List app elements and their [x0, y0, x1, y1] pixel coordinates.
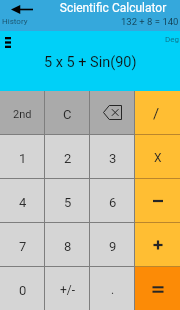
other: Minus: [148, 190, 168, 210]
staticText: 6: [109, 195, 117, 210]
staticText: 5: [64, 195, 72, 210]
button[interactable]: Back: [0, 0, 44, 19]
button[interactable]: +/-: [45, 266, 90, 310]
staticText: Deg: [165, 35, 179, 44]
staticText: 7: [19, 239, 27, 254]
staticText: 4: [19, 195, 27, 210]
staticText: 8: [64, 239, 72, 254]
staticText: X: [154, 151, 162, 165]
button[interactable]: Plus: [135, 222, 180, 266]
staticText: 132 + 8 = 140: [121, 16, 179, 27]
button[interactable]: 9: [90, 222, 135, 266]
staticText: 0: [19, 283, 27, 298]
button[interactable]: 4: [0, 178, 45, 222]
staticText: +/-: [60, 283, 76, 297]
staticText: 3: [109, 151, 117, 166]
button[interactable]: 5: [45, 178, 90, 222]
button[interactable]: Delete: [90, 91, 135, 134]
staticText: History: [2, 17, 28, 26]
button[interactable]: 1: [0, 134, 45, 178]
button[interactable]: 2nd: [0, 91, 45, 134]
staticText: 5 x 5 + Sin(90): [44, 54, 137, 71]
button[interactable]: 7: [0, 222, 45, 266]
button[interactable]: 6: [90, 178, 135, 222]
button[interactable]: 3: [90, 134, 135, 178]
button[interactable]: 2: [45, 134, 90, 178]
button[interactable]: .: [90, 266, 135, 310]
other: Plus: [148, 234, 168, 254]
staticText: Scientific Calculator: [46, 1, 180, 15]
button[interactable]: C: [45, 91, 90, 134]
other: Equals: [148, 278, 168, 298]
button[interactable]: 0: [0, 266, 45, 310]
button[interactable]: Menu: [0, 34, 16, 50]
staticText: /: [153, 105, 160, 123]
staticText: 2: [64, 151, 72, 166]
button[interactable]: Multiply: [135, 134, 180, 178]
staticText: 2nd: [13, 108, 32, 121]
staticText: 9: [109, 239, 117, 254]
other: Delete: [103, 105, 122, 120]
button[interactable]: 8: [45, 222, 90, 266]
button[interactable]: Minus: [135, 178, 180, 222]
button[interactable]: Divide: [135, 91, 180, 134]
button[interactable]: Equals: [135, 266, 180, 310]
staticText: .: [111, 283, 115, 297]
staticText: 1: [19, 151, 27, 166]
staticText: C: [63, 107, 72, 122]
